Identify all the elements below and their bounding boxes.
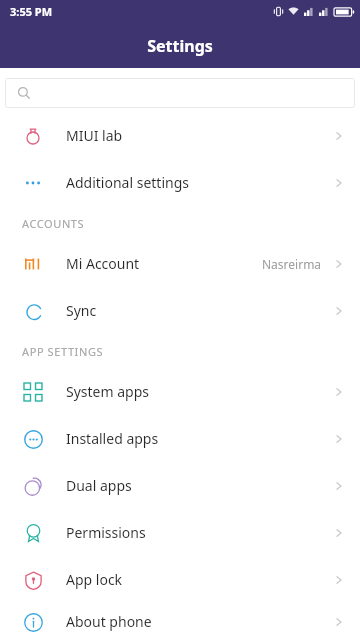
button[interactable]: Dual apps: [0, 462, 360, 509]
staticText: Permissions: [66, 523, 332, 542]
button[interactable]: System apps: [0, 368, 360, 415]
staticText: Installed apps: [66, 429, 332, 448]
staticText: 3:55 PM: [10, 4, 53, 19]
staticText: ACCOUNTS: [22, 216, 85, 231]
staticText: About phone: [66, 612, 332, 631]
staticText: Mi Account: [66, 254, 262, 273]
button[interactable]: Additional settings: [0, 159, 360, 206]
staticText: Nasreirma: [262, 256, 322, 272]
button[interactable]: Mi Account: [0, 240, 360, 287]
staticText: Dual apps: [66, 476, 332, 495]
button[interactable]: MIUI lab: [0, 112, 360, 159]
staticText: App lock: [66, 570, 332, 589]
button[interactable]: [5, 78, 355, 108]
staticText: System apps: [66, 382, 332, 401]
button[interactable]: Permissions: [0, 509, 360, 556]
button[interactable]: Installed apps: [0, 415, 360, 462]
button[interactable]: About phone: [0, 603, 360, 640]
staticText: APP SETTINGS: [22, 344, 104, 359]
button[interactable]: Sync: [0, 287, 360, 334]
staticText: Sync: [66, 301, 332, 320]
staticText: Settings: [147, 35, 213, 57]
button[interactable]: App lock: [0, 556, 360, 603]
staticText: MIUI lab: [66, 126, 332, 145]
staticText: Additional settings: [66, 173, 332, 192]
